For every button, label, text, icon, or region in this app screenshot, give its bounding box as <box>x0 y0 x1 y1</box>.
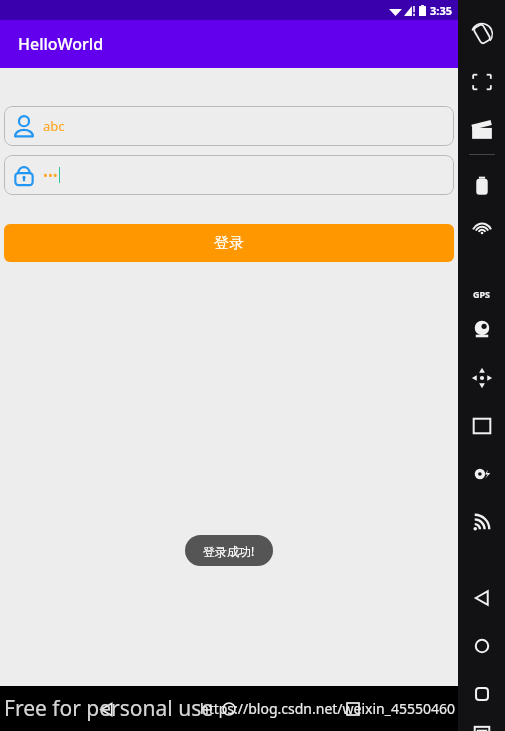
button[interactable]: ID <box>458 402 505 450</box>
button[interactable]: abc <box>12 106 454 146</box>
staticText: 登录成功! <box>203 543 255 559</box>
button[interactable]: Record <box>458 450 505 498</box>
button[interactable]: ••• <box>12 155 454 195</box>
button[interactable]: Back <box>458 574 505 622</box>
staticText: https://blog.csdn.net/weixin_45550460 <box>200 699 456 718</box>
button[interactable]: More <box>458 718 505 731</box>
button[interactable]: GPS label <box>458 258 505 306</box>
button[interactable]: Rotate <box>458 10 505 58</box>
button[interactable]: Home <box>458 622 505 670</box>
button[interactable]: Actual size <box>458 58 505 106</box>
button[interactable]: Screen record <box>458 106 505 154</box>
staticText: HelloWorld <box>18 33 104 55</box>
staticText: Free for personal use <box>4 694 214 723</box>
staticText: 登录 <box>214 234 244 253</box>
staticText: abc <box>43 117 65 135</box>
button[interactable]: Battery <box>458 162 505 210</box>
staticText: 3:35 <box>430 3 452 18</box>
staticText: GPS <box>473 288 491 300</box>
button[interactable]: Back <box>88 691 124 727</box>
button[interactable]: 登录 <box>4 224 454 262</box>
button[interactable]: Camera <box>458 306 505 354</box>
button[interactable]: Cellular <box>458 498 505 546</box>
button[interactable]: D-pad <box>458 354 505 402</box>
button[interactable]: Home <box>211 691 247 727</box>
button[interactable]: GPS <box>458 210 505 258</box>
button[interactable]: Overview <box>458 670 505 718</box>
staticText: ••• <box>43 166 58 184</box>
button[interactable]: Recent apps <box>335 691 371 727</box>
